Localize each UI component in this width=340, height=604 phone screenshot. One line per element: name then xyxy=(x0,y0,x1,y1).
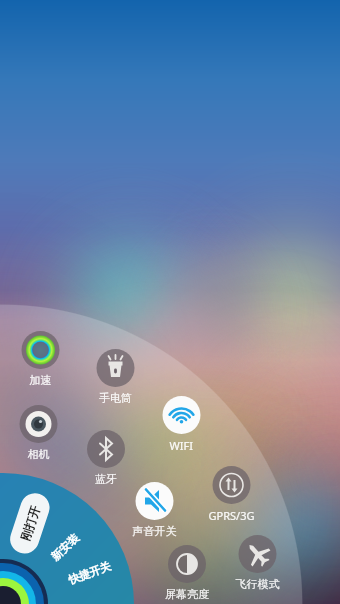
button[interactable] xyxy=(0,0,340,604)
